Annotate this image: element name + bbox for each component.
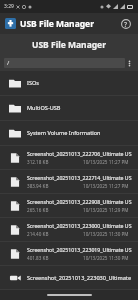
button[interactable]: Screenshot_20251013_222908_Ultimate US <box>0 194 138 218</box>
staticText: 383.94 KB <box>27 183 49 189</box>
button[interactable]: More options <box>125 56 134 70</box>
staticText: 10/13/2025 11:30 PM <box>83 231 129 237</box>
button[interactable]: ISOs <box>0 71 138 96</box>
staticText: Screenshot_20251013_222706_Ultimate US <box>27 150 132 157</box>
staticText: 312.18 KB <box>27 159 49 165</box>
button[interactable]: Screenshot_20251013_223019_Ultimate US <box>0 242 138 266</box>
button[interactable]: Help <box>119 17 133 31</box>
staticText: 10/13/2025 11:30 PM <box>83 255 129 261</box>
button[interactable]: Screenshot_20251013_222706_Ultimate US <box>0 146 138 170</box>
staticText: Screenshot_20251013_223019_Ultimate US <box>27 246 132 253</box>
staticText: 214.40 KB <box>27 231 49 237</box>
staticText: 401.83 KB <box>27 255 49 261</box>
button[interactable]: MultiOS-USB <box>0 96 138 121</box>
staticText: USB File Manager <box>32 39 106 51</box>
staticText: MultiOS-USB <box>27 104 61 112</box>
staticText: 10/13/2025 11:29 PM <box>83 207 129 213</box>
button[interactable]: Screenshot_20251013_223030_Ultimate US <box>0 266 138 290</box>
staticText: ? <box>124 20 128 29</box>
staticText: / <box>7 59 10 67</box>
staticText: ISOs <box>27 79 40 87</box>
staticText: 3:29 <box>4 3 14 10</box>
button[interactable]: / <box>4 58 125 68</box>
staticText: Screenshot_20251013_223030_Ultimate US <box>27 274 132 282</box>
staticText: Screenshot_20251013_222714_Ultimate US <box>27 174 132 181</box>
button[interactable]: System Volume Information <box>0 121 138 146</box>
staticText: Screenshot_20251013_223000_Ultimate US <box>27 222 132 229</box>
button[interactable]: Screenshot_20251013_222714_Ultimate US <box>0 170 138 194</box>
staticText: 265.16 KB <box>27 207 49 213</box>
staticText: Screenshot_20251013_222908_Ultimate US <box>27 198 132 205</box>
staticText: 10/13/2025 11:27 PM <box>83 183 129 189</box>
button[interactable]: Screenshot_20251013_223000_Ultimate US <box>0 218 138 242</box>
staticText: System Volume Information <box>27 129 101 137</box>
staticText: USB File Manager <box>20 18 94 30</box>
staticText: 10/13/2025 11:27 PM <box>83 159 129 165</box>
